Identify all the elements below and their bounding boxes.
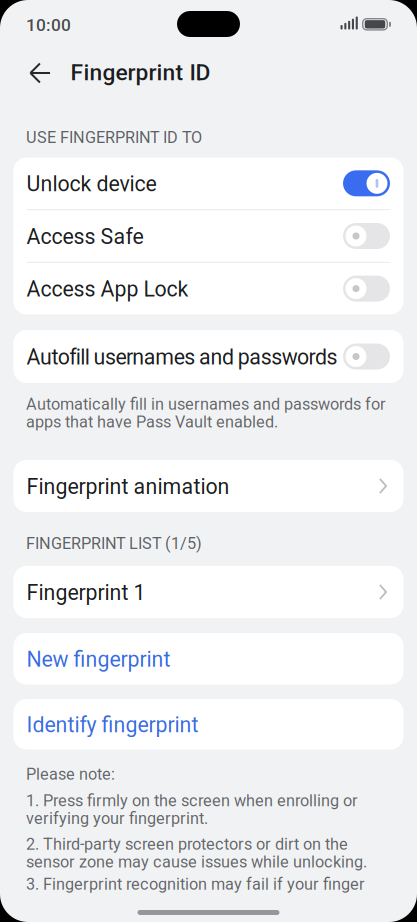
staticText: 1. Press firmly on the screen when enrol… <box>26 792 358 827</box>
staticText: Unlock device <box>26 172 156 197</box>
button[interactable]: New fingerprint <box>13 633 403 684</box>
button[interactable]: Identify fingerprint <box>13 699 403 749</box>
staticText: New fingerprint <box>26 647 170 672</box>
button[interactable]: Unlock device <box>13 157 403 209</box>
staticText: Access Safe <box>26 224 143 249</box>
staticText: FINGERPRINT LIST (1/5) <box>26 534 202 553</box>
staticText: 3. Fingerprint recognition may fail if y… <box>26 875 365 893</box>
staticText: 10:00 <box>26 15 71 35</box>
button[interactable]: Back <box>21 54 59 92</box>
staticText: Fingerprint 1 <box>26 580 145 605</box>
staticText: Identify fingerprint <box>26 712 198 737</box>
button[interactable]: Fingerprint 1 <box>13 566 403 618</box>
staticText: Automatically fill in usernames and pass… <box>26 395 386 431</box>
button[interactable]: Access App Lock <box>13 263 403 314</box>
button[interactable]: Autofill usernames and passwords <box>13 330 403 383</box>
staticText: Autofill usernames and passwords <box>26 345 337 370</box>
button[interactable]: Access Safe <box>13 210 403 262</box>
staticText: Fingerprint ID <box>70 59 210 86</box>
staticText: Fingerprint animation <box>26 474 229 499</box>
staticText: 2. Third-party screen protectors or dirt… <box>26 835 367 871</box>
staticText: Please note: <box>26 765 115 783</box>
staticText: Access App Lock <box>26 277 188 302</box>
button[interactable]: Fingerprint animation <box>13 460 403 512</box>
staticText: USE FINGERPRINT ID TO <box>26 128 202 147</box>
